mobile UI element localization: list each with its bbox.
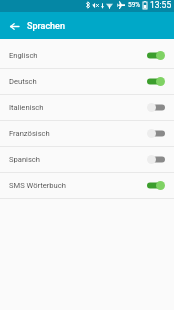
staticText: Italienisch	[9, 103, 44, 112]
button[interactable]: Back	[3, 15, 25, 37]
staticText: Sprachen	[27, 21, 65, 32]
button[interactable]: SMS Wörterbuch	[0, 173, 174, 199]
button[interactable]: Englisch on	[147, 50, 165, 61]
button[interactable]: SMS Wörterbuch on	[147, 180, 165, 191]
staticText: Englisch	[9, 51, 38, 60]
staticText: Französisch	[9, 129, 50, 138]
button[interactable]: Deutsch	[0, 69, 174, 95]
staticText: Spanisch	[9, 155, 41, 164]
button[interactable]: Spanisch off	[147, 154, 165, 165]
staticText: Deutsch	[9, 77, 37, 86]
button[interactable]: Englisch	[0, 43, 174, 69]
button[interactable]: Französisch off	[147, 128, 165, 139]
staticText: SMS Wörterbuch	[9, 181, 66, 190]
button[interactable]: Französisch	[0, 121, 174, 147]
staticText: 13:55	[150, 0, 172, 10]
staticText: 59%	[128, 1, 141, 9]
button[interactable]: Italienisch off	[147, 102, 165, 113]
button[interactable]: Italienisch	[0, 95, 174, 121]
button[interactable]: Spanisch	[0, 147, 174, 173]
button[interactable]: Deutsch on	[147, 76, 165, 87]
